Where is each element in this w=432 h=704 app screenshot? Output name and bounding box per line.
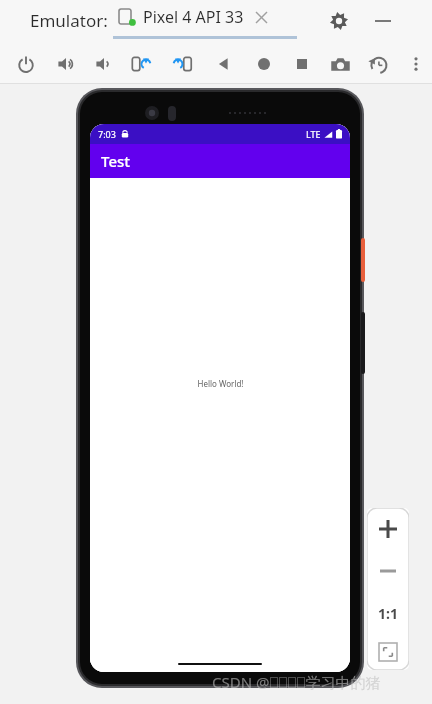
button[interactable]: Home: [252, 52, 276, 76]
button[interactable]: Overview: [290, 52, 314, 76]
button[interactable]: Power: [14, 52, 38, 76]
button[interactable]: Back: [212, 52, 236, 76]
button[interactable]: More: [404, 52, 428, 76]
staticText: LTE: [306, 128, 321, 140]
staticText: Emulator:: [30, 9, 108, 32]
button[interactable]: Test: [90, 144, 350, 178]
button[interactable]: Rotate left: [130, 52, 154, 76]
button[interactable]: Fit to window: [367, 634, 409, 670]
button[interactable]: Actual size: [367, 592, 409, 634]
button[interactable]: Pixel 4 API 33: [118, 6, 270, 28]
button[interactable]: Volume down: [92, 52, 116, 76]
button[interactable]: Volume up: [54, 52, 78, 76]
button[interactable]: Zoom out: [367, 550, 409, 592]
staticText: Pixel 4 API 33: [143, 6, 244, 28]
button[interactable]: Zoom in: [367, 508, 409, 550]
button[interactable]: Minimize: [372, 10, 394, 32]
staticText: Hello World!: [197, 378, 244, 389]
staticText: 7:03: [98, 128, 116, 140]
button[interactable]: Close tab: [252, 8, 270, 26]
button[interactable]: Record and playback: [366, 52, 390, 76]
button[interactable]: Take screenshot: [328, 52, 352, 76]
staticText: Test: [101, 151, 131, 171]
button[interactable]: Rotate right: [170, 52, 194, 76]
staticText: CSDN @⎕⎕⎕⎕学习中的猪: [212, 672, 381, 692]
staticText: 1:1: [378, 604, 398, 623]
button[interactable]: Settings: [328, 10, 350, 32]
